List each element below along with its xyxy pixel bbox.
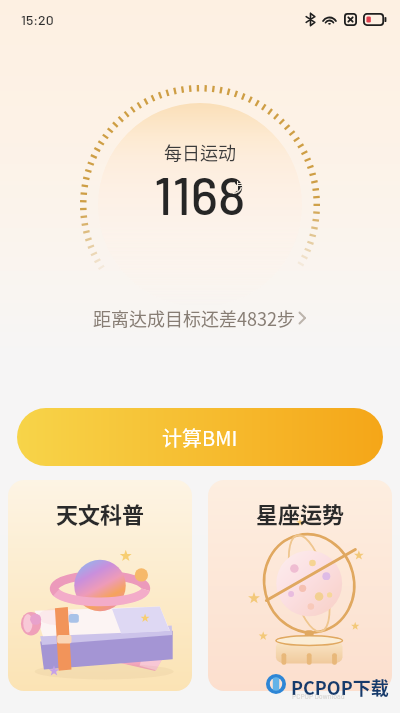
button[interactable]: 计算BMI xyxy=(17,408,383,466)
staticText: 1168 xyxy=(154,163,246,225)
staticText: 15:20 xyxy=(21,11,54,28)
staticText: 计算BMI xyxy=(162,423,238,452)
staticText: PCPOP Download xyxy=(292,692,345,700)
staticText: 步 xyxy=(231,177,245,196)
button[interactable]: 天文科普 xyxy=(8,480,192,691)
staticText: 天文科普 xyxy=(56,497,145,529)
staticText: PCPOP下载 xyxy=(291,674,389,700)
staticText: 星座运势 xyxy=(256,497,345,529)
button[interactable]: 星座运势 xyxy=(208,480,392,691)
staticText: 距离达成目标还差4832步 xyxy=(93,305,295,331)
button[interactable]: 距离达成目标还差4832步 xyxy=(0,303,400,333)
staticText: 每日运动 xyxy=(164,139,236,165)
